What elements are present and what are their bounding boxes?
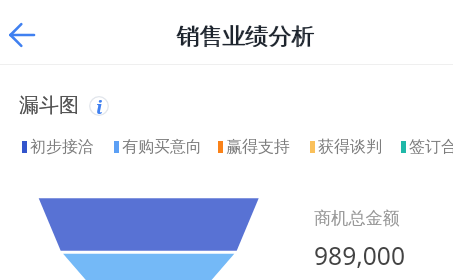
- button[interactable]: About the funnel chart: [88, 95, 109, 116]
- staticText: 有购买意向: [122, 137, 202, 157]
- staticText: 销售业绩分析: [176, 22, 314, 51]
- staticText: 赢得支持: [226, 137, 290, 157]
- button[interactable]: 赢得支持: [218, 137, 290, 157]
- button[interactable]: Back: [0, 12, 46, 58]
- button[interactable]: 获得谈判: [310, 137, 382, 157]
- button[interactable]: 有购买意向: [114, 137, 202, 157]
- staticText: 初步接洽: [30, 137, 94, 157]
- button[interactable]: 初步接洽: [22, 137, 94, 157]
- staticText: 商机总金额: [314, 207, 400, 229]
- staticText: 签订合同: [409, 137, 453, 157]
- staticText: 漏斗图: [19, 93, 79, 118]
- button[interactable]: 签订合同: [401, 137, 453, 157]
- staticText: 漏斗图: [19, 93, 79, 118]
- staticText: 获得谈判: [318, 137, 382, 157]
- staticText: 989,000: [314, 239, 405, 273]
- staticText: i: [96, 95, 103, 116]
- staticText: 销售业绩分析: [177, 22, 315, 51]
